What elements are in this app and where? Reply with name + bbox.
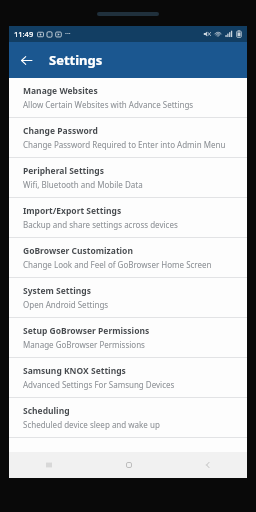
staticText: Setup GoBrowser Permissions (23, 325, 150, 337)
staticText: System Settings (23, 285, 91, 297)
button[interactable]: Scheduling (9, 398, 247, 437)
staticText: Scheduling (23, 405, 70, 417)
staticText: Scheduled device sleep and wake up (23, 419, 160, 430)
staticText: Settings (49, 51, 103, 69)
staticText: Peripheral Settings (23, 165, 104, 177)
staticText: Advanced Settings For Samsung Devices (23, 379, 175, 390)
button[interactable]: GoBrowser Customization (9, 238, 247, 277)
staticText: Change Password Required to Enter into A… (23, 139, 226, 150)
staticText: Change Look and Feel of GoBrowser Home S… (23, 259, 212, 270)
staticText: ··· (65, 29, 71, 39)
staticText: Manage GoBrowser Permissions (23, 339, 145, 350)
staticText: Open Android Settings (23, 299, 109, 310)
staticText: Change Password (23, 125, 98, 137)
staticText: Manage Websites (23, 85, 98, 97)
button[interactable]: Samsung KNOX Settings (9, 358, 247, 397)
staticText: Import/Export Settings (23, 205, 122, 217)
staticText: 11:49 (14, 29, 34, 39)
button[interactable]: Import/Export Settings (9, 198, 247, 237)
button[interactable]: Peripheral Settings (9, 158, 247, 197)
staticText: Wifi, Bluetooth and Mobile Data (23, 179, 143, 190)
button[interactable]: Change Password (9, 118, 247, 157)
button[interactable]: Home (89, 452, 168, 478)
button[interactable]: Back (9, 43, 43, 77)
staticText: Allow Certain Websites with Advance Sett… (23, 99, 194, 110)
staticText: GoBrowser Customization (23, 245, 133, 257)
button[interactable]: System Settings (9, 278, 247, 317)
staticText: Backup and share settings across devices (23, 219, 178, 230)
button[interactable]: Setup GoBrowser Permissions (9, 318, 247, 357)
staticText: Samsung KNOX Settings (23, 365, 126, 377)
button[interactable]: Manage Websites (9, 78, 247, 117)
